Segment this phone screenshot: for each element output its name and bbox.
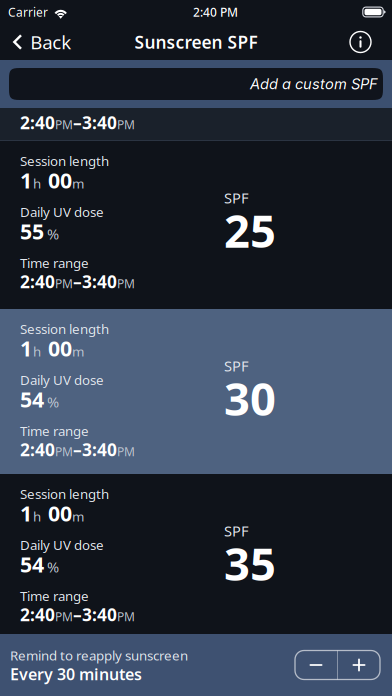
staticText: PM — [117, 609, 135, 624]
staticText: Add a custom SPF — [250, 75, 378, 93]
staticText: SPF — [224, 356, 249, 375]
button[interactable]: Increase — [338, 650, 380, 679]
staticText: % — [47, 557, 59, 576]
staticText: SPF — [224, 188, 249, 207]
staticText: h — [33, 174, 41, 192]
staticText: PM — [55, 117, 73, 132]
staticText: h — [33, 507, 41, 525]
staticText: 1 — [20, 499, 32, 527]
staticText: – — [73, 438, 82, 461]
staticText: 2:40 PM — [193, 4, 238, 20]
staticText: Session length — [20, 152, 109, 170]
staticText: 00 — [48, 499, 72, 527]
staticText: Back — [30, 30, 71, 54]
staticText: 35 — [224, 533, 276, 593]
staticText: 3:40 — [82, 270, 117, 293]
staticText: % — [47, 224, 59, 243]
staticText: Time range — [20, 422, 89, 440]
button[interactable]: Session length — [0, 474, 392, 633]
staticText: Sunscreen SPF — [134, 30, 257, 53]
staticText: Carrier — [8, 4, 48, 20]
staticText: 54 — [20, 385, 44, 413]
staticText: 2:40 — [20, 603, 55, 626]
button[interactable]: Session length — [0, 309, 392, 474]
staticText: 3:40 — [82, 111, 117, 134]
button[interactable]: Back — [0, 24, 83, 60]
button[interactable]: Info — [337, 24, 392, 60]
staticText: 00 — [48, 166, 72, 194]
staticText: m — [72, 174, 84, 192]
staticText: PM — [55, 444, 73, 459]
staticText: 3:40 — [82, 438, 117, 461]
staticText: PM — [55, 609, 73, 624]
button[interactable]: Add a custom SPF — [9, 68, 383, 100]
staticText: 2:40 — [20, 111, 55, 134]
staticText: Daily UV dose — [20, 203, 104, 221]
staticText: Daily UV dose — [20, 536, 104, 554]
staticText: – — [73, 270, 82, 293]
staticText: PM — [55, 276, 73, 291]
staticText: 00 — [48, 334, 72, 362]
staticText: h — [33, 342, 41, 360]
staticText: 1 — [20, 334, 32, 362]
staticText: Session length — [20, 320, 109, 338]
staticText: Time range — [20, 587, 89, 605]
staticText: 30 — [224, 368, 276, 428]
staticText: 2:40 — [20, 270, 55, 293]
staticText: m — [72, 342, 84, 360]
staticText: 25 — [224, 200, 276, 260]
staticText: 2:40 — [20, 438, 55, 461]
button[interactable]: Decrease — [295, 650, 337, 679]
staticText: Time range — [20, 254, 89, 272]
button[interactable]: Session length — [0, 141, 392, 309]
staticText: 55 — [20, 217, 44, 245]
staticText: 3:40 — [82, 603, 117, 626]
staticText: Session length — [20, 485, 109, 503]
staticText: – — [73, 603, 82, 626]
staticText: 54 — [20, 550, 44, 578]
staticText: Remind to reapply sunscreen — [10, 646, 188, 664]
staticText: Daily UV dose — [20, 371, 104, 389]
staticText: – — [73, 111, 82, 134]
staticText: 1 — [20, 166, 32, 194]
staticText: PM — [117, 444, 135, 459]
staticText: Every 30 minutes — [10, 663, 142, 685]
staticText: % — [47, 392, 59, 411]
staticText: PM — [117, 117, 135, 132]
staticText: SPF — [224, 521, 249, 540]
staticText: m — [72, 507, 84, 525]
staticText: PM — [117, 276, 135, 291]
